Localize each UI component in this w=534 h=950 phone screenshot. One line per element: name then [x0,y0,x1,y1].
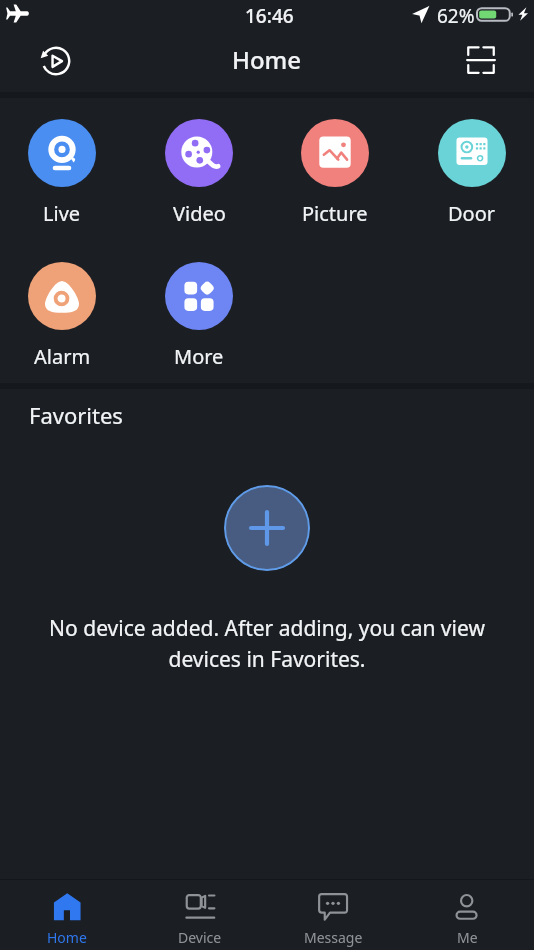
staticText: Live [43,200,81,227]
staticText: Alarm [34,343,91,370]
staticText: 62% [437,3,475,29]
staticText: No device added. After adding, you can v… [45,614,489,673]
button[interactable]: Home [0,880,133,950]
button[interactable]: Device [133,880,266,950]
staticText: Me [457,928,478,947]
staticText: Favorites [29,400,123,430]
button[interactable]: Live [28,119,96,227]
staticText: Home [232,43,302,76]
button[interactable]: Video [165,119,233,227]
staticText: 16:46 [245,3,294,29]
staticText: Home [47,928,87,947]
button[interactable]: Picture [301,119,369,227]
button[interactable]: Scan QR code [459,38,503,82]
staticText: More [174,343,224,370]
staticText: Picture [302,200,368,227]
button[interactable]: Me [400,880,534,950]
button[interactable]: More [165,262,233,370]
button[interactable]: Alarm [28,262,96,370]
button[interactable]: Playback history [34,39,78,83]
staticText: Message [304,928,363,947]
button[interactable]: Door [438,119,506,227]
staticText: Door [448,200,496,227]
staticText: Video [173,200,226,227]
staticText: Device [178,928,222,947]
button[interactable]: Add device [224,485,310,571]
button[interactable]: Message [266,880,400,950]
